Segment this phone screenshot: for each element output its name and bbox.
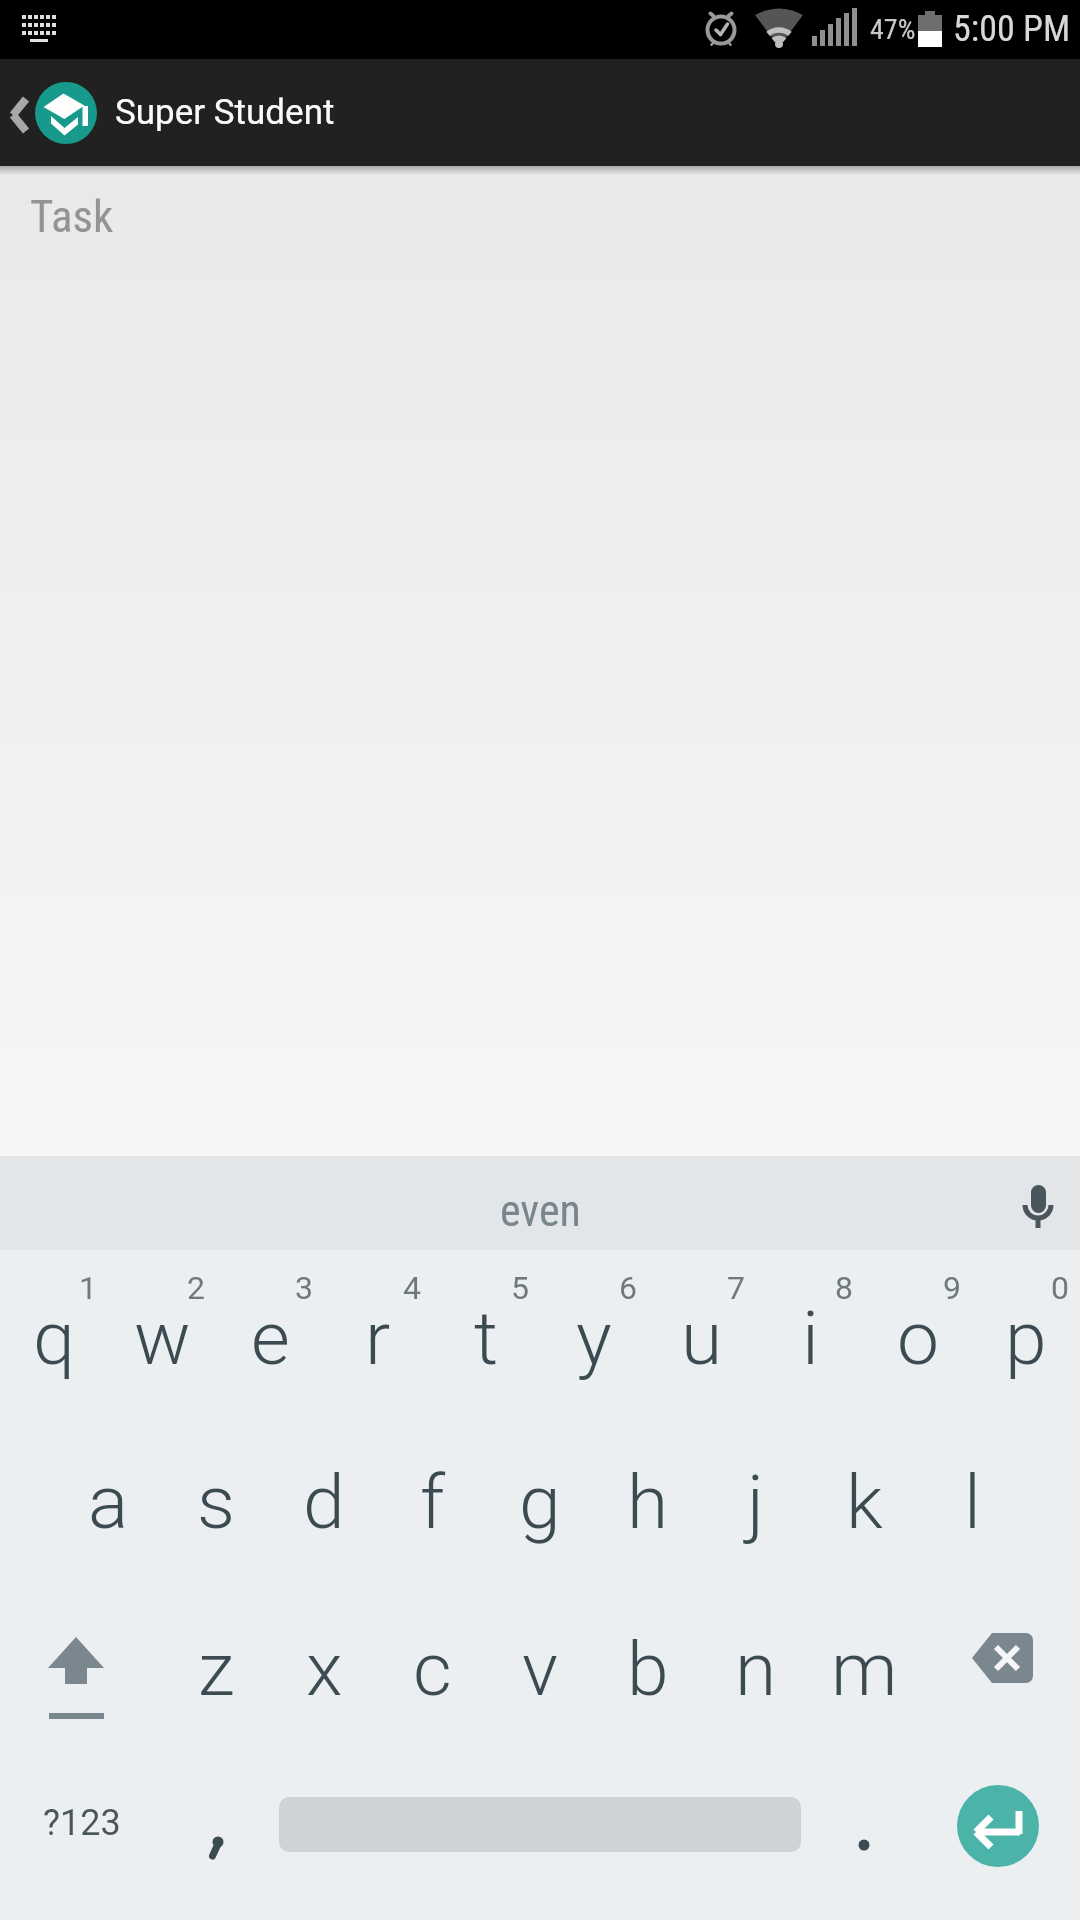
- button[interactable]: x: [270, 1585, 378, 1753]
- button[interactable]: [0, 1585, 162, 1753]
- staticText: g: [519, 1458, 561, 1546]
- button[interactable]: y: [540, 1254, 648, 1422]
- staticText: 8: [835, 1269, 853, 1307]
- staticText: b: [627, 1625, 669, 1713]
- button[interactable]: even: [390, 1164, 690, 1258]
- button[interactable]: [990, 1156, 1080, 1250]
- button[interactable]: h: [594, 1418, 702, 1585]
- button[interactable]: s: [162, 1418, 270, 1585]
- staticText: c: [413, 1625, 452, 1713]
- staticText: k: [846, 1458, 883, 1546]
- staticText: Task: [30, 190, 114, 243]
- button[interactable]: m: [810, 1585, 918, 1753]
- staticText: 1: [79, 1269, 97, 1307]
- staticText: z: [198, 1625, 235, 1713]
- staticText: even: [500, 1185, 581, 1237]
- staticText: 9: [943, 1269, 961, 1307]
- button[interactable]: [162, 1753, 270, 1920]
- staticText: p: [1005, 1294, 1047, 1382]
- staticText: e: [251, 1294, 290, 1382]
- button[interactable]: [0, 166, 1080, 1156]
- staticText: y: [576, 1294, 612, 1382]
- staticText: i: [802, 1294, 819, 1382]
- button[interactable]: z: [162, 1585, 270, 1753]
- button[interactable]: k: [810, 1418, 918, 1585]
- staticText: q: [33, 1294, 75, 1382]
- staticText: ?123: [43, 1802, 121, 1844]
- button[interactable]: l: [918, 1418, 1026, 1585]
- staticText: h: [627, 1458, 669, 1546]
- button[interactable]: r: [324, 1254, 432, 1422]
- button[interactable]: u: [648, 1254, 756, 1422]
- staticText: t: [474, 1294, 499, 1382]
- button[interactable]: b: [594, 1585, 702, 1753]
- button[interactable]: o: [864, 1254, 972, 1422]
- staticText: x: [306, 1625, 343, 1713]
- button[interactable]: d: [270, 1418, 378, 1585]
- button[interactable]: [270, 1753, 810, 1920]
- button[interactable]: j: [702, 1418, 810, 1585]
- button[interactable]: [918, 1753, 1080, 1920]
- staticText: j: [747, 1458, 765, 1546]
- button[interactable]: g: [486, 1418, 594, 1585]
- button[interactable]: v: [486, 1585, 594, 1753]
- staticText: m: [831, 1625, 898, 1713]
- staticText: 5: [511, 1269, 529, 1307]
- staticText: s: [197, 1458, 236, 1546]
- staticText: 0: [1051, 1269, 1069, 1307]
- staticText: 7: [727, 1269, 745, 1307]
- button[interactable]: p: [972, 1254, 1080, 1422]
- button[interactable]: f: [378, 1418, 486, 1585]
- staticText: l: [964, 1458, 981, 1546]
- button[interactable]: n: [702, 1585, 810, 1753]
- staticText: n: [735, 1625, 777, 1713]
- button[interactable]: [810, 1753, 918, 1920]
- button[interactable]: q: [0, 1254, 108, 1422]
- button[interactable]: i: [756, 1254, 864, 1422]
- staticText: u: [681, 1294, 723, 1382]
- staticText: 47%: [870, 13, 916, 46]
- staticText: Super Student: [115, 92, 335, 133]
- staticText: r: [365, 1294, 391, 1382]
- staticText: d: [303, 1458, 345, 1546]
- staticText: 6: [619, 1269, 637, 1307]
- button[interactable]: w: [108, 1254, 216, 1422]
- staticText: 5:00 PM: [953, 8, 1071, 50]
- button[interactable]: [0, 1753, 162, 1920]
- button[interactable]: t: [432, 1254, 540, 1422]
- staticText: f: [420, 1458, 445, 1546]
- staticText: w: [134, 1294, 191, 1382]
- button[interactable]: c: [378, 1585, 486, 1753]
- staticText: 2: [187, 1269, 205, 1307]
- staticText: o: [897, 1294, 940, 1382]
- button[interactable]: [0, 59, 110, 166]
- staticText: a: [88, 1458, 129, 1546]
- staticText: v: [522, 1625, 559, 1713]
- button[interactable]: [918, 1585, 1080, 1753]
- staticText: 3: [295, 1269, 313, 1307]
- button[interactable]: e: [216, 1254, 324, 1422]
- button[interactable]: a: [54, 1418, 162, 1585]
- staticText: 4: [403, 1269, 421, 1307]
